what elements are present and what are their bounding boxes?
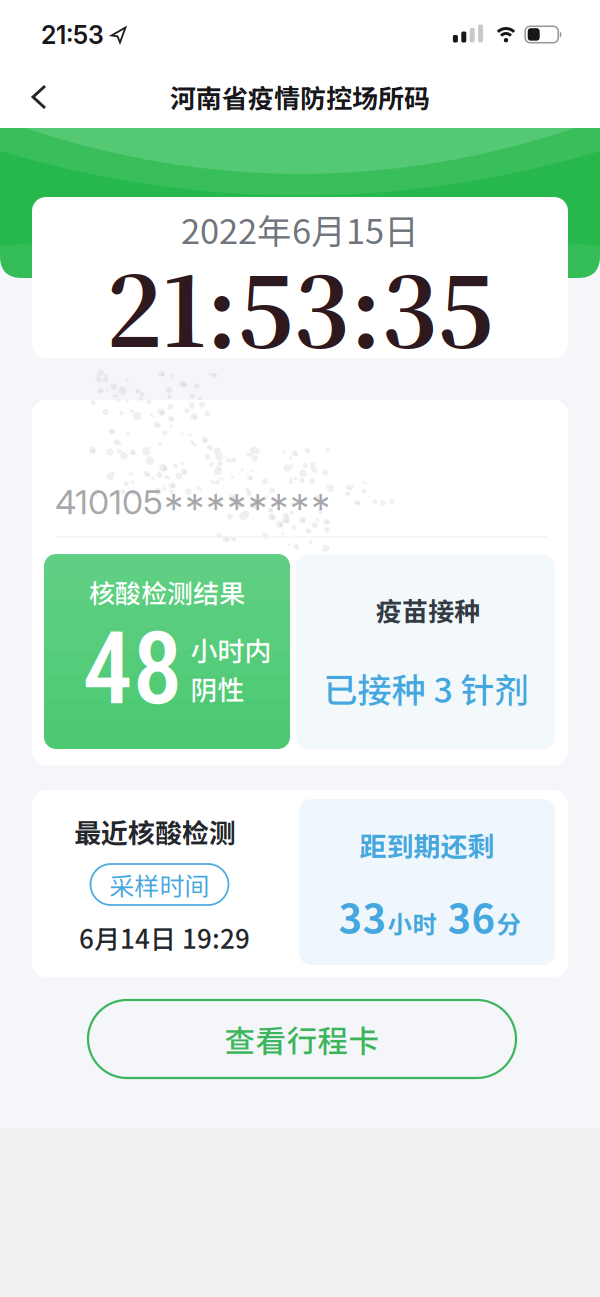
- staticText: 分: [496, 905, 521, 940]
- staticText: 已接种 3 针剂: [323, 663, 528, 713]
- staticText: 小时: [387, 905, 437, 940]
- staticText: 33: [338, 887, 386, 945]
- staticText: 21:53:35: [106, 238, 494, 374]
- staticText: 36: [438, 887, 495, 945]
- staticText: 21:53: [41, 20, 104, 50]
- staticText: 疫苗接种: [376, 591, 480, 629]
- staticText: 距到期还剩: [359, 825, 494, 865]
- staticText: 采样时间: [109, 866, 209, 903]
- staticText: 小时内: [190, 630, 271, 669]
- staticText: 河南省疫情防控场所码: [170, 78, 430, 116]
- staticText: 2022年6月15日: [181, 204, 419, 254]
- staticText: 6月14日 19:29: [79, 919, 250, 956]
- staticText: 48: [82, 610, 182, 728]
- staticText: 最近核酸检测: [74, 812, 236, 851]
- staticText: 阴性: [190, 669, 244, 708]
- button[interactable]: 查看行程卡: [88, 1000, 516, 1078]
- staticText: 查看行程卡: [224, 1017, 379, 1061]
- button[interactable]: Back: [21, 74, 57, 120]
- staticText: 核酸检测结果: [89, 573, 245, 611]
- staticText: 410105********: [55, 481, 331, 522]
